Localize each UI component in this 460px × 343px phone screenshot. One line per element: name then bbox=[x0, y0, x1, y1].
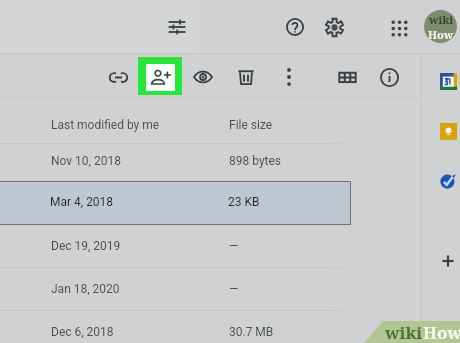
staticText: 30.7 MB bbox=[229, 325, 274, 339]
button[interactable]: Share bbox=[146, 64, 175, 91]
staticText: File size bbox=[229, 118, 273, 132]
button[interactable]: More actions bbox=[274, 62, 304, 92]
staticText: Jan 18, 2020 bbox=[51, 282, 120, 296]
button[interactable]: Last modified by me bbox=[0, 98, 351, 143]
button[interactable]: Google Keep bbox=[434, 117, 460, 145]
button[interactable]: Remove bbox=[231, 62, 261, 92]
button[interactable]: Google apps bbox=[384, 13, 414, 43]
staticText: Mar 4, 2018 bbox=[50, 195, 114, 209]
staticText: Nov 10, 2018 bbox=[51, 154, 121, 168]
button[interactable]: Mar 4, 2018 bbox=[0, 181, 351, 225]
staticText: — bbox=[229, 239, 239, 253]
staticText: wiki bbox=[385, 321, 423, 343]
staticText: How bbox=[423, 321, 460, 343]
button[interactable]: Switch to grid view bbox=[332, 62, 362, 92]
staticText: Dec 19, 2019 bbox=[51, 239, 121, 253]
button[interactable]: Google Account bbox=[424, 10, 457, 43]
button[interactable]: Settings bbox=[319, 12, 349, 42]
button[interactable]: Preview bbox=[188, 62, 218, 92]
button[interactable]: Dec 19, 2019 bbox=[0, 225, 351, 268]
staticText: Last modified by me bbox=[51, 118, 160, 132]
button[interactable]: Search options bbox=[162, 12, 192, 42]
button[interactable]: Get shareable link bbox=[103, 62, 133, 92]
button[interactable]: View details bbox=[374, 62, 404, 92]
staticText: 23 KB bbox=[228, 195, 260, 209]
button[interactable]: Google Calendar bbox=[434, 67, 460, 95]
button[interactable]: Google Tasks bbox=[434, 167, 460, 195]
staticText: How bbox=[428, 27, 454, 42]
staticText: Dec 6, 2018 bbox=[51, 325, 114, 339]
staticText: 898 bytes bbox=[229, 154, 282, 168]
staticText: — bbox=[229, 282, 239, 296]
button[interactable]: Support bbox=[280, 12, 310, 42]
button[interactable]: Nov 10, 2018 bbox=[0, 140, 351, 183]
button[interactable]: Dec 6, 2018 bbox=[0, 311, 351, 343]
button[interactable]: Get add-ons bbox=[434, 247, 460, 275]
button[interactable]: Jan 18, 2020 bbox=[0, 268, 351, 311]
staticText: wiki bbox=[429, 12, 454, 27]
